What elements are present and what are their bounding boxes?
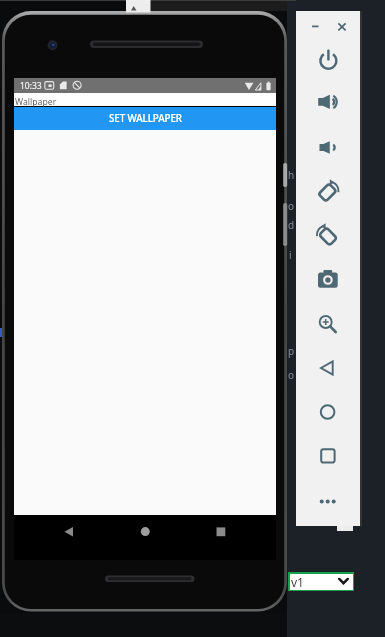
button[interactable] — [313, 442, 341, 470]
staticText: 10:33 — [20, 80, 42, 92]
button[interactable] — [313, 398, 341, 426]
button[interactable] — [208, 520, 234, 544]
button[interactable] — [313, 266, 341, 294]
staticText: i — [289, 248, 292, 262]
button[interactable] — [313, 222, 341, 250]
button[interactable] — [56, 520, 82, 544]
staticText: d — [288, 218, 295, 232]
staticText: o — [288, 199, 295, 213]
staticText: h — [288, 168, 295, 182]
button[interactable]: SET WALLPAPER — [14, 107, 276, 130]
staticText: SET WALLPAPER — [109, 112, 182, 125]
button[interactable] — [313, 178, 341, 206]
button[interactable] — [335, 19, 349, 33]
staticText: v1 — [291, 574, 304, 590]
staticText: p — [288, 344, 295, 358]
staticText: o — [288, 368, 295, 382]
button[interactable] — [313, 133, 341, 161]
button[interactable] — [313, 487, 341, 515]
button[interactable] — [288, 572, 354, 591]
button[interactable] — [308, 19, 322, 33]
button[interactable] — [313, 88, 341, 116]
button[interactable] — [313, 310, 341, 338]
staticText: Wallpaper — [15, 96, 57, 108]
button[interactable] — [313, 47, 341, 75]
button[interactable] — [313, 354, 341, 382]
button[interactable] — [132, 520, 158, 544]
